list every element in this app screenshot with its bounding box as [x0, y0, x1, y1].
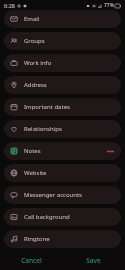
staticText: Important dates [24, 103, 115, 111]
button[interactable]: Call background [4, 208, 121, 226]
staticText: Relationships [24, 125, 115, 133]
button[interactable]: Messenger accounts [4, 186, 121, 204]
staticText: Groups [24, 37, 115, 45]
button[interactable]: Relationships [4, 120, 121, 138]
button[interactable]: Work info [4, 54, 121, 72]
staticText: Website [24, 169, 115, 177]
button[interactable]: Email [4, 10, 121, 28]
button[interactable]: Website [4, 164, 121, 182]
button[interactable]: Address [4, 76, 121, 94]
button[interactable]: Groups [4, 32, 121, 50]
staticText: Cancel [21, 256, 42, 265]
staticText: Email [24, 15, 115, 23]
staticText: Save [86, 256, 101, 265]
staticText: Messenger accounts [24, 191, 115, 199]
staticText: Address [24, 81, 115, 89]
staticText: Ringtone [24, 235, 115, 243]
button[interactable]: Cancel [0, 250, 62, 270]
button[interactable]: Notes [4, 142, 121, 160]
button[interactable]: Remove Notes field [105, 146, 115, 156]
button[interactable]: Ringtone [4, 230, 121, 248]
staticText: Call background [24, 213, 115, 221]
button[interactable]: Save [62, 250, 125, 270]
button[interactable]: Important dates [4, 98, 121, 116]
staticText: 77% [104, 2, 114, 9]
staticText: Work info [24, 59, 115, 67]
staticText: Notes [24, 147, 105, 155]
staticText: 6:28 [4, 2, 15, 9]
